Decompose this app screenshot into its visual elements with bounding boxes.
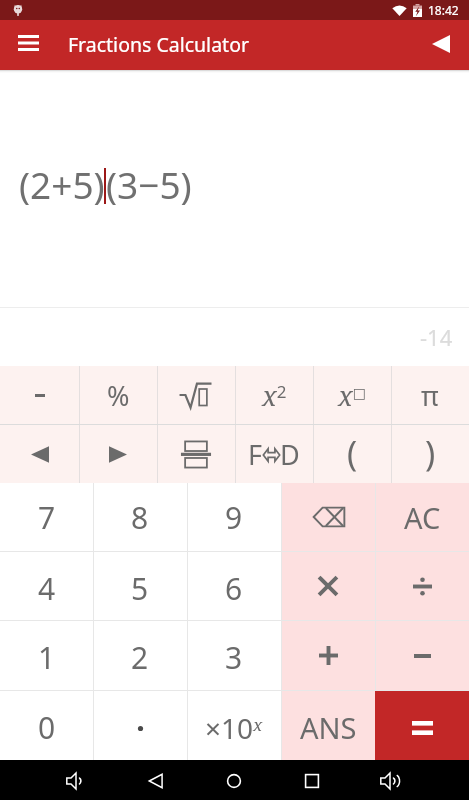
staticText: ) bbox=[425, 430, 436, 476]
button[interactable]: Open navigation menu bbox=[0, 20, 56, 70]
button[interactable]: 4 bbox=[0, 552, 93, 620]
button[interactable]: Back bbox=[130, 760, 182, 800]
button[interactable]: Back bbox=[413, 20, 469, 70]
staticText: 7 bbox=[38, 497, 56, 538]
staticText: 0 bbox=[38, 707, 56, 748]
staticText: ×10x bbox=[205, 709, 263, 747]
other: Square root bbox=[180, 380, 212, 410]
button[interactable]: Decimal point bbox=[93, 691, 187, 760]
button[interactable]: F bbox=[235, 425, 313, 483]
button[interactable]: 3 bbox=[187, 621, 281, 690]
staticText: 9 bbox=[225, 497, 243, 538]
button[interactable]: ANS bbox=[281, 691, 375, 760]
staticText: (3−5) bbox=[106, 159, 192, 209]
button[interactable]: 8 bbox=[93, 483, 187, 551]
button[interactable]: Fraction bbox=[157, 425, 235, 483]
button[interactable]: Square root bbox=[157, 366, 235, 424]
button[interactable]: ×10x bbox=[187, 691, 281, 760]
button[interactable]: Home bbox=[208, 760, 260, 800]
button[interactable]: 9 bbox=[187, 483, 281, 551]
staticText: % bbox=[107, 377, 130, 414]
staticText: (2+5) bbox=[19, 159, 105, 209]
button[interactable]: Equals bbox=[375, 691, 469, 760]
staticText: Fractions Calculator bbox=[68, 31, 249, 58]
staticText: F bbox=[248, 436, 263, 473]
other: Divide bbox=[413, 578, 432, 595]
button[interactable]: 0 bbox=[0, 691, 93, 760]
staticText: -14 bbox=[420, 322, 453, 352]
staticText: 4 bbox=[38, 568, 56, 609]
other: Cursor left bbox=[31, 445, 49, 464]
staticText: 5 bbox=[131, 568, 149, 609]
other: Multiply bbox=[319, 577, 337, 595]
button[interactable]: x2 bbox=[235, 366, 313, 424]
other: Decimal point bbox=[137, 725, 144, 732]
button[interactable]: 5 bbox=[93, 552, 187, 620]
button[interactable]: x□ bbox=[313, 366, 391, 424]
button[interactable]: 7 bbox=[0, 483, 93, 551]
other: Fraction bbox=[180, 440, 212, 469]
staticText: 6 bbox=[225, 568, 243, 609]
staticText: ANS bbox=[300, 708, 357, 747]
button[interactable]: Cursor left bbox=[0, 425, 79, 483]
button[interactable]: % bbox=[79, 366, 157, 424]
staticText: 2 bbox=[131, 637, 149, 678]
staticText: 1 bbox=[38, 637, 56, 678]
staticText: π bbox=[421, 377, 439, 414]
button[interactable]: Negative bbox=[0, 366, 79, 424]
button[interactable]: Volume down bbox=[50, 760, 102, 800]
button[interactable]: Volume up bbox=[364, 760, 416, 800]
button[interactable]: π bbox=[391, 366, 469, 424]
button[interactable]: Cursor right bbox=[79, 425, 157, 483]
staticText: x2 bbox=[262, 377, 287, 414]
button[interactable]: 1 bbox=[0, 621, 93, 690]
button[interactable]: Delete bbox=[281, 483, 375, 551]
button[interactable]: Recent apps bbox=[286, 760, 338, 800]
staticText: AC bbox=[404, 498, 441, 537]
staticText: 18:42 bbox=[428, 2, 459, 18]
staticText: 8 bbox=[131, 497, 149, 538]
button[interactable]: AC bbox=[375, 483, 469, 551]
button[interactable]: Multiply bbox=[281, 552, 375, 620]
button[interactable]: 2 bbox=[93, 621, 187, 690]
staticText: 3 bbox=[225, 637, 243, 678]
staticText: x□ bbox=[338, 377, 366, 414]
button[interactable]: Divide bbox=[375, 552, 469, 620]
other: Equals bbox=[412, 721, 433, 735]
staticText: D bbox=[280, 436, 300, 473]
other: Plus bbox=[319, 646, 338, 665]
button[interactable]: ( bbox=[313, 425, 391, 483]
other: Delete bbox=[313, 507, 345, 527]
other: Cursor right bbox=[109, 445, 127, 464]
button[interactable]: ) bbox=[391, 425, 469, 483]
button[interactable]: 6 bbox=[187, 552, 281, 620]
staticText: ( bbox=[347, 430, 358, 476]
button[interactable]: Plus bbox=[281, 621, 375, 690]
button[interactable]: Minus bbox=[375, 621, 469, 690]
